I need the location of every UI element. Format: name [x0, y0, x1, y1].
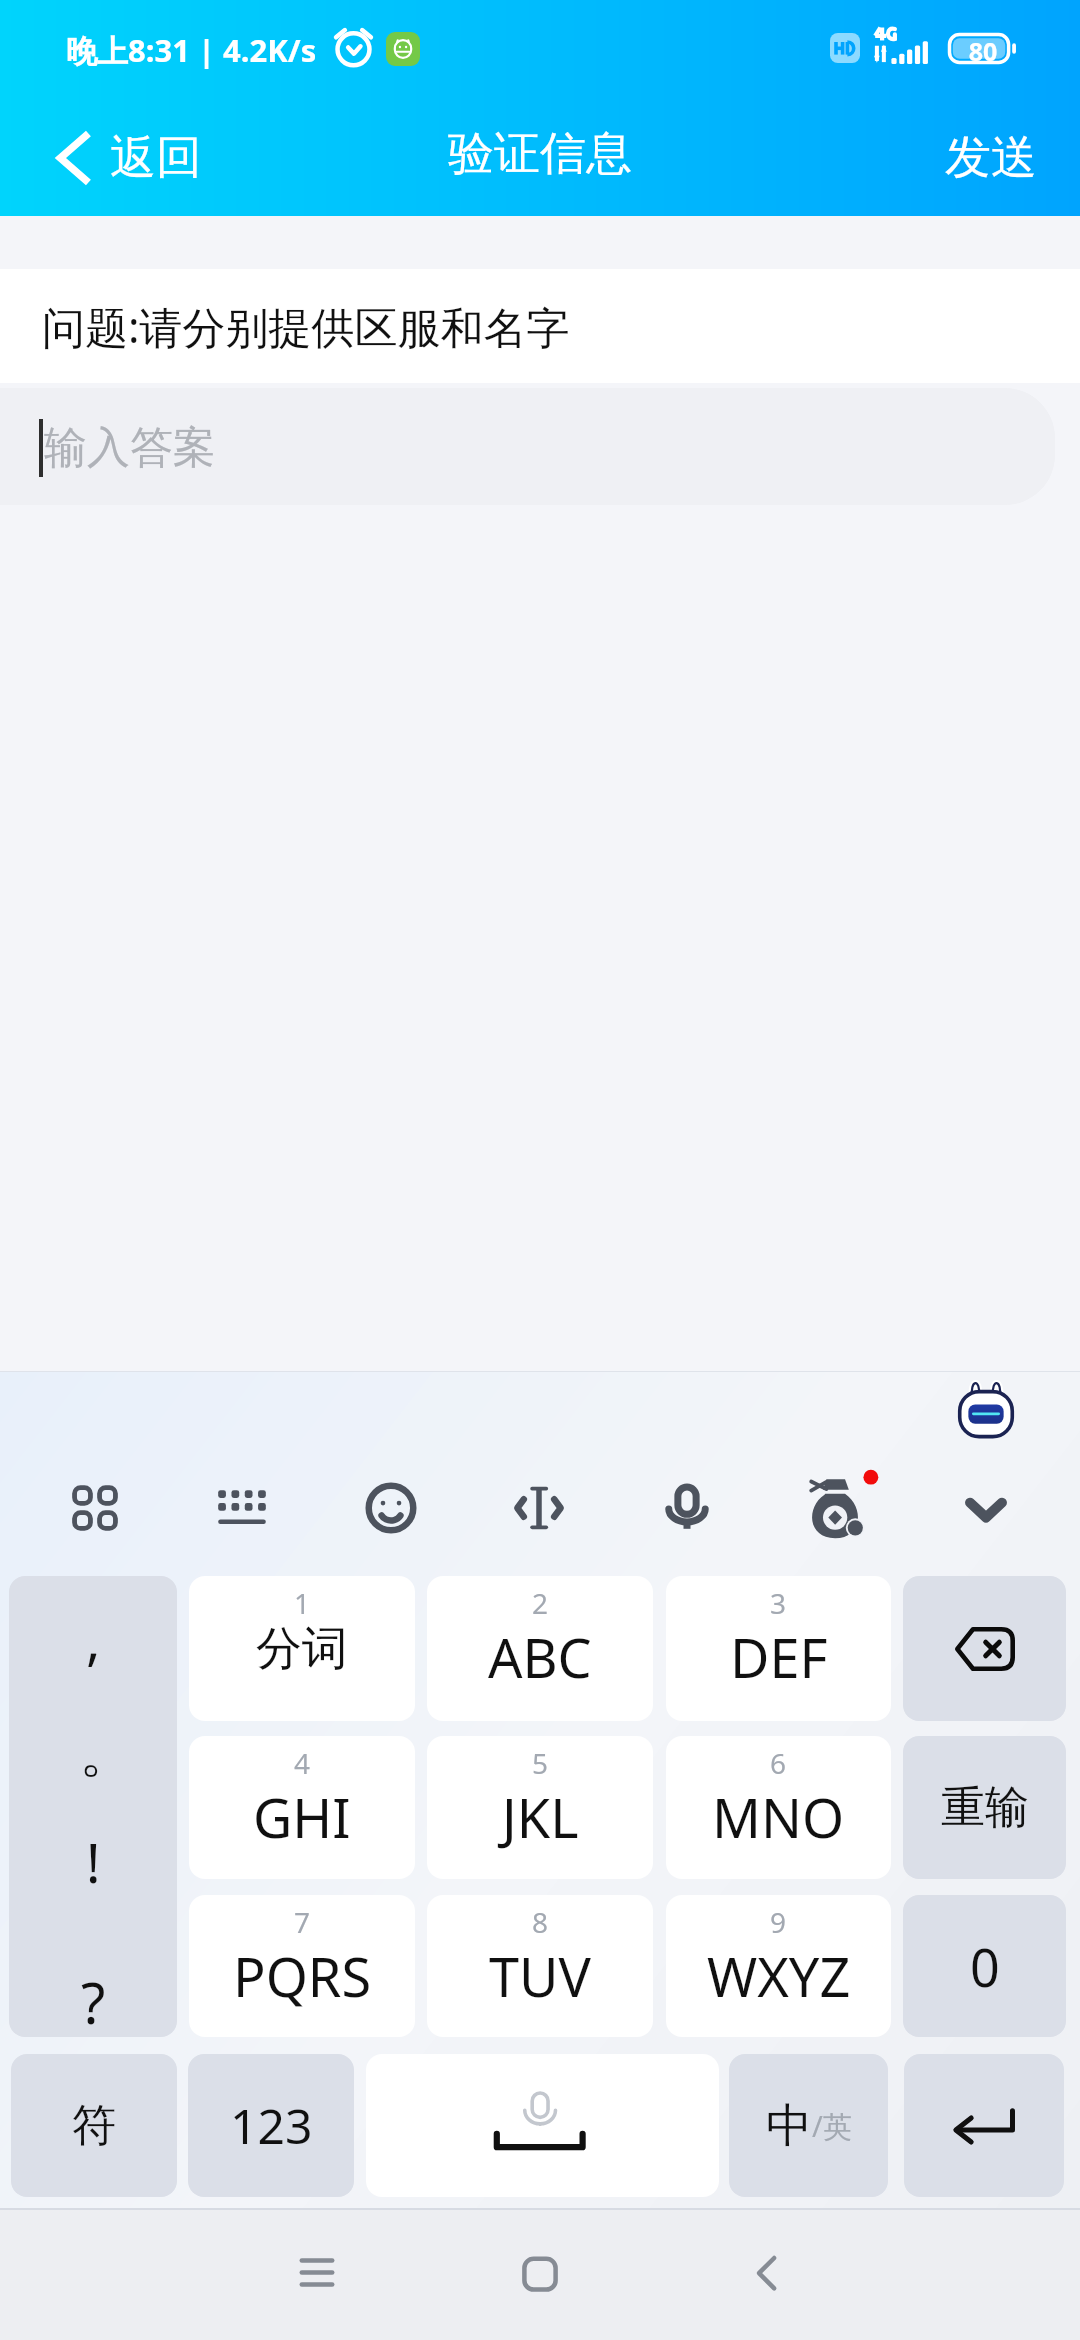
staticText: 问题:请分别提供区服和名字: [42, 297, 570, 356]
staticText: 9: [770, 1903, 787, 1941]
staticText: /英: [812, 2106, 852, 2146]
button[interactable]: 符: [11, 2054, 177, 2197]
staticText: GHI: [253, 1780, 351, 1854]
button[interactable]: Voice input: [649, 1468, 725, 1544]
staticText: 5: [532, 1744, 549, 1782]
staticText: 发送: [945, 129, 1037, 187]
button[interactable]: [903, 1576, 1066, 1721]
button[interactable]: Recent apps: [277, 2234, 357, 2314]
staticText: 分词: [256, 1620, 348, 1678]
button[interactable]: 2: [427, 1576, 653, 1721]
staticText: 输入答案: [44, 421, 216, 475]
button[interactable]: 5: [427, 1736, 653, 1879]
staticText: 晚上8:31 | 4.2K/s: [66, 29, 317, 71]
button[interactable]: [0, 388, 1055, 505]
button[interactable]: 9: [666, 1895, 891, 2037]
staticText: 2: [532, 1584, 549, 1622]
button[interactable]: Move cursor: [501, 1470, 577, 1546]
button[interactable]: 中: [729, 2054, 888, 2197]
staticText: 6: [770, 1744, 787, 1782]
button[interactable]: 发送: [915, 100, 1080, 216]
button[interactable]: 重输: [903, 1736, 1066, 1879]
staticText: 8: [532, 1903, 549, 1941]
staticText: 80: [962, 34, 1004, 68]
staticText: ,: [86, 1602, 101, 1672]
button[interactable]: 0: [903, 1895, 1066, 2037]
button[interactable]: ,: [9, 1576, 177, 2037]
button[interactable]: 8: [427, 1895, 653, 2037]
button[interactable]: 123: [188, 2054, 354, 2197]
staticText: 1: [294, 1584, 311, 1622]
staticText: 中: [766, 2097, 812, 2155]
button[interactable]: 3: [666, 1576, 891, 1721]
button[interactable]: Keyboard layout: [204, 1470, 280, 1546]
staticText: 符: [72, 2098, 116, 2153]
staticText: 7: [294, 1903, 311, 1941]
button[interactable]: Emoji: [353, 1470, 429, 1546]
staticText: TUV: [489, 1939, 591, 2013]
staticText: 3: [770, 1584, 787, 1622]
button[interactable]: Hide keyboard: [948, 1470, 1024, 1546]
staticText: !: [86, 1825, 101, 1895]
button[interactable]: 返回: [0, 100, 226, 216]
button[interactable]: Home: [500, 2234, 580, 2314]
button[interactable]: Rewards: [796, 1472, 872, 1548]
staticText: ?: [81, 1964, 106, 2034]
button[interactable]: Back: [727, 2234, 807, 2314]
button[interactable]: [904, 2054, 1064, 2197]
button[interactable]: 4: [189, 1736, 415, 1879]
button[interactable]: 6: [666, 1736, 891, 1879]
staticText: PQRS: [233, 1939, 372, 2013]
staticText: 。: [79, 1717, 135, 1787]
staticText: JKL: [502, 1780, 579, 1854]
staticText: 123: [230, 2093, 313, 2158]
staticText: MNO: [712, 1780, 845, 1854]
button[interactable]: Assistant: [950, 1374, 1022, 1446]
staticText: WXYZ: [707, 1939, 851, 2013]
staticText: 重输: [941, 1780, 1029, 1835]
button[interactable]: 1: [189, 1576, 415, 1721]
button[interactable]: [366, 2054, 719, 2197]
staticText: ABC: [488, 1620, 592, 1694]
button[interactable]: 7: [189, 1895, 415, 2037]
staticText: DEF: [730, 1620, 828, 1694]
staticText: 验证信息: [0, 125, 1080, 183]
staticText: 返回: [110, 129, 202, 187]
staticText: 4: [294, 1744, 311, 1782]
staticText: 0: [970, 1931, 1000, 2002]
button[interactable]: Symbols: [57, 1470, 133, 1546]
